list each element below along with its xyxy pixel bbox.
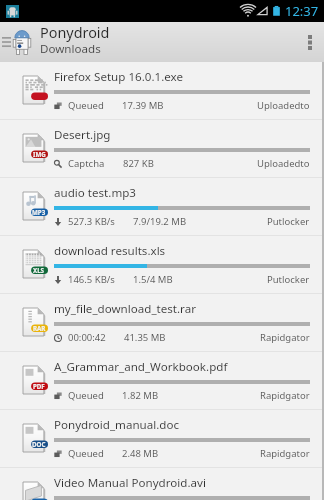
staticText: Downloads <box>40 41 101 57</box>
staticText: 146.5 KB/s <box>68 273 115 286</box>
staticText: Ponydroid <box>40 23 110 43</box>
button[interactable]: PDF <box>0 352 324 409</box>
staticText: audio test.mp3 <box>54 185 136 201</box>
staticText: DOC <box>32 440 46 447</box>
staticText: 12:37 <box>285 2 319 20</box>
staticText: XLS <box>33 266 45 273</box>
staticText: Queued <box>68 99 104 112</box>
staticText: 7.9/19.2 MB <box>133 215 187 228</box>
staticText: Desert.jpg <box>54 127 111 143</box>
staticText: Rapidgator <box>260 447 310 460</box>
staticText: Ponydroid_manual.doc <box>54 417 180 433</box>
staticText: PDF <box>33 382 45 389</box>
staticText: Putlocker <box>267 273 310 286</box>
button[interactable]: RAR <box>0 294 324 351</box>
button[interactable]: More options <box>296 22 324 62</box>
staticText: Firefox Setup 16.0.1.exe <box>54 69 184 85</box>
staticText: Rapidgator <box>260 389 310 402</box>
button[interactable]: AVI <box>0 468 324 500</box>
staticText: Uploadedto <box>257 157 310 170</box>
staticText: 827 KB <box>123 157 154 170</box>
button[interactable]: Firefox Setup 16.0.1.exe <box>0 62 324 119</box>
button[interactable]: MP3 <box>0 178 324 235</box>
staticText: Rapidgator <box>260 331 310 344</box>
staticText: 17.39 MB <box>122 99 164 112</box>
staticText: 2.48 MB <box>122 447 159 460</box>
staticText: Queued <box>68 447 104 460</box>
button[interactable]: DOC <box>0 410 324 467</box>
button[interactable]: XLS <box>0 236 324 293</box>
staticText: 00:00:42 <box>68 331 106 344</box>
button[interactable]: IMG <box>0 120 324 177</box>
staticText: Video Manual Ponydroid.avi <box>54 475 206 491</box>
staticText: my_file_download_test.rar <box>54 301 196 317</box>
staticText: download results.xls <box>54 243 166 259</box>
staticText: 527.3 KB/s <box>68 215 115 228</box>
staticText: A_Grammar_and_Workbook.pdf <box>54 359 228 375</box>
staticText: 1.5/4 MB <box>133 273 173 286</box>
button[interactable]: Navigation menu <box>0 22 12 62</box>
staticText: Uploadedto <box>257 99 310 112</box>
staticText: 1.82 MB <box>122 389 159 402</box>
staticText: 41.35 MB <box>124 331 166 344</box>
staticText: IMG <box>33 150 46 157</box>
staticText: AVI <box>34 498 45 500</box>
staticText: MP3 <box>32 208 46 215</box>
staticText: Captcha <box>68 157 105 170</box>
staticText: Putlocker <box>267 215 310 228</box>
staticText: RAR <box>33 324 46 331</box>
staticText: Queued <box>68 389 104 402</box>
